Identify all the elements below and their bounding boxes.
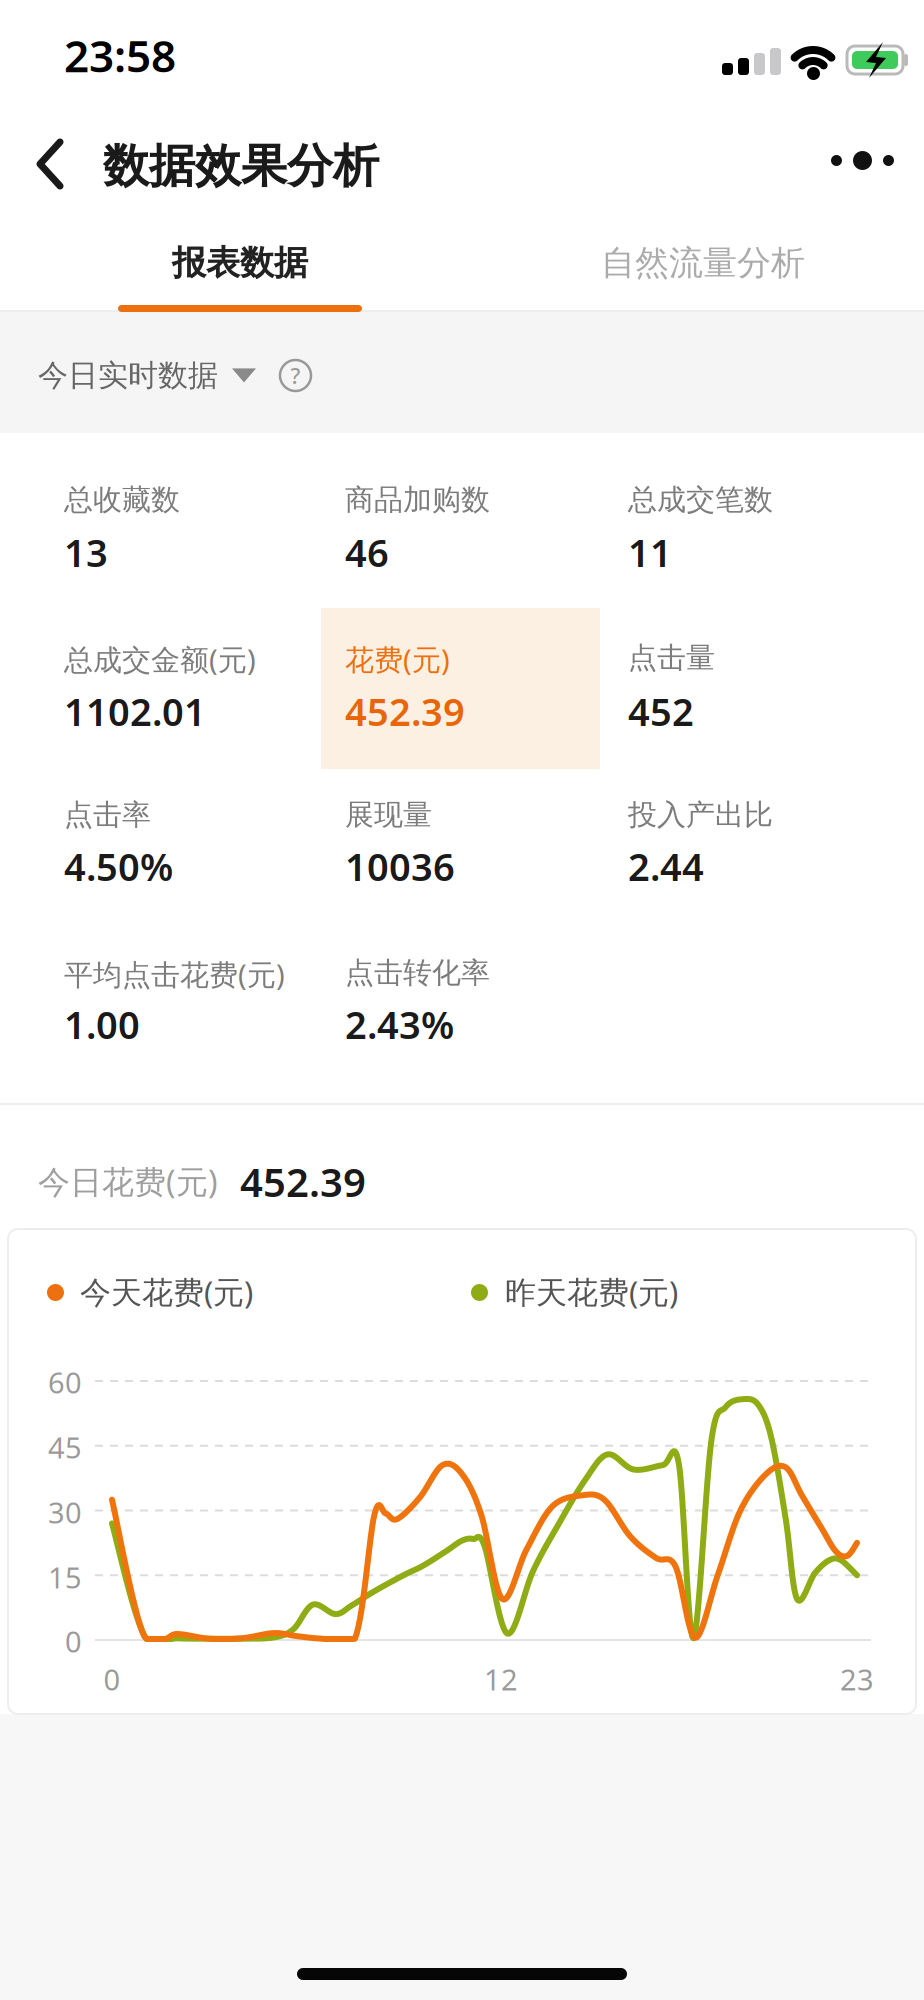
staticText: 46 xyxy=(345,527,389,577)
staticText: 点击量 xyxy=(628,640,715,676)
button[interactable]: 自然流量分析 xyxy=(601,242,805,284)
staticText: 平均点击花费(元) xyxy=(64,955,285,993)
staticText: 0 xyxy=(65,1622,82,1660)
staticText: 点击率 xyxy=(64,797,151,833)
staticText: 总成交笔数 xyxy=(628,482,773,518)
staticText: 452 xyxy=(628,686,694,736)
button[interactable]: 报表数据 xyxy=(118,242,362,284)
staticText: 数据效果分析 xyxy=(103,138,379,194)
staticText: 点击转化率 xyxy=(345,955,490,991)
staticText: 13 xyxy=(64,527,108,577)
staticText: 自然流量分析 xyxy=(601,242,805,284)
button[interactable]: 今日实时数据 xyxy=(38,357,256,394)
staticText: 60 xyxy=(48,1363,82,1401)
staticText: 商品加购数 xyxy=(345,482,490,518)
staticText: ? xyxy=(290,361,300,390)
staticText: 总成交金额(元) xyxy=(64,640,256,678)
staticText: 展现量 xyxy=(345,797,432,833)
staticText: 4.50% xyxy=(64,841,173,891)
button[interactable] xyxy=(0,0,924,2000)
staticText: 今日花费(元) xyxy=(38,1160,218,1202)
staticText: 0 xyxy=(103,1660,120,1698)
staticText: 昨天花费(元) xyxy=(505,1271,678,1312)
staticText: 报表数据 xyxy=(172,242,308,284)
button[interactable] xyxy=(831,151,894,170)
staticText: 2.43% xyxy=(345,999,454,1049)
staticText: 11 xyxy=(628,527,672,577)
button[interactable]: ? xyxy=(280,360,311,391)
staticText: 1102.01 xyxy=(64,686,206,736)
staticText: 今日实时数据 xyxy=(38,357,218,394)
staticText: 45 xyxy=(48,1428,82,1466)
staticText: 23:58 xyxy=(64,26,176,84)
staticText: 12 xyxy=(484,1660,518,1698)
staticText: 总收藏数 xyxy=(64,482,180,518)
staticText: 今天花费(元) xyxy=(80,1271,253,1312)
staticText: 花费(元) xyxy=(345,640,450,678)
staticText: 15 xyxy=(48,1558,82,1596)
staticText: 452.39 xyxy=(240,1155,366,1208)
staticText: 2.44 xyxy=(628,841,704,891)
staticText: 30 xyxy=(48,1493,82,1531)
staticText: 23 xyxy=(840,1660,874,1698)
staticText: 452.39 xyxy=(345,686,465,736)
staticText: 1.00 xyxy=(64,999,140,1049)
staticText: 10036 xyxy=(345,841,455,891)
staticText: 投入产出比 xyxy=(628,797,773,833)
